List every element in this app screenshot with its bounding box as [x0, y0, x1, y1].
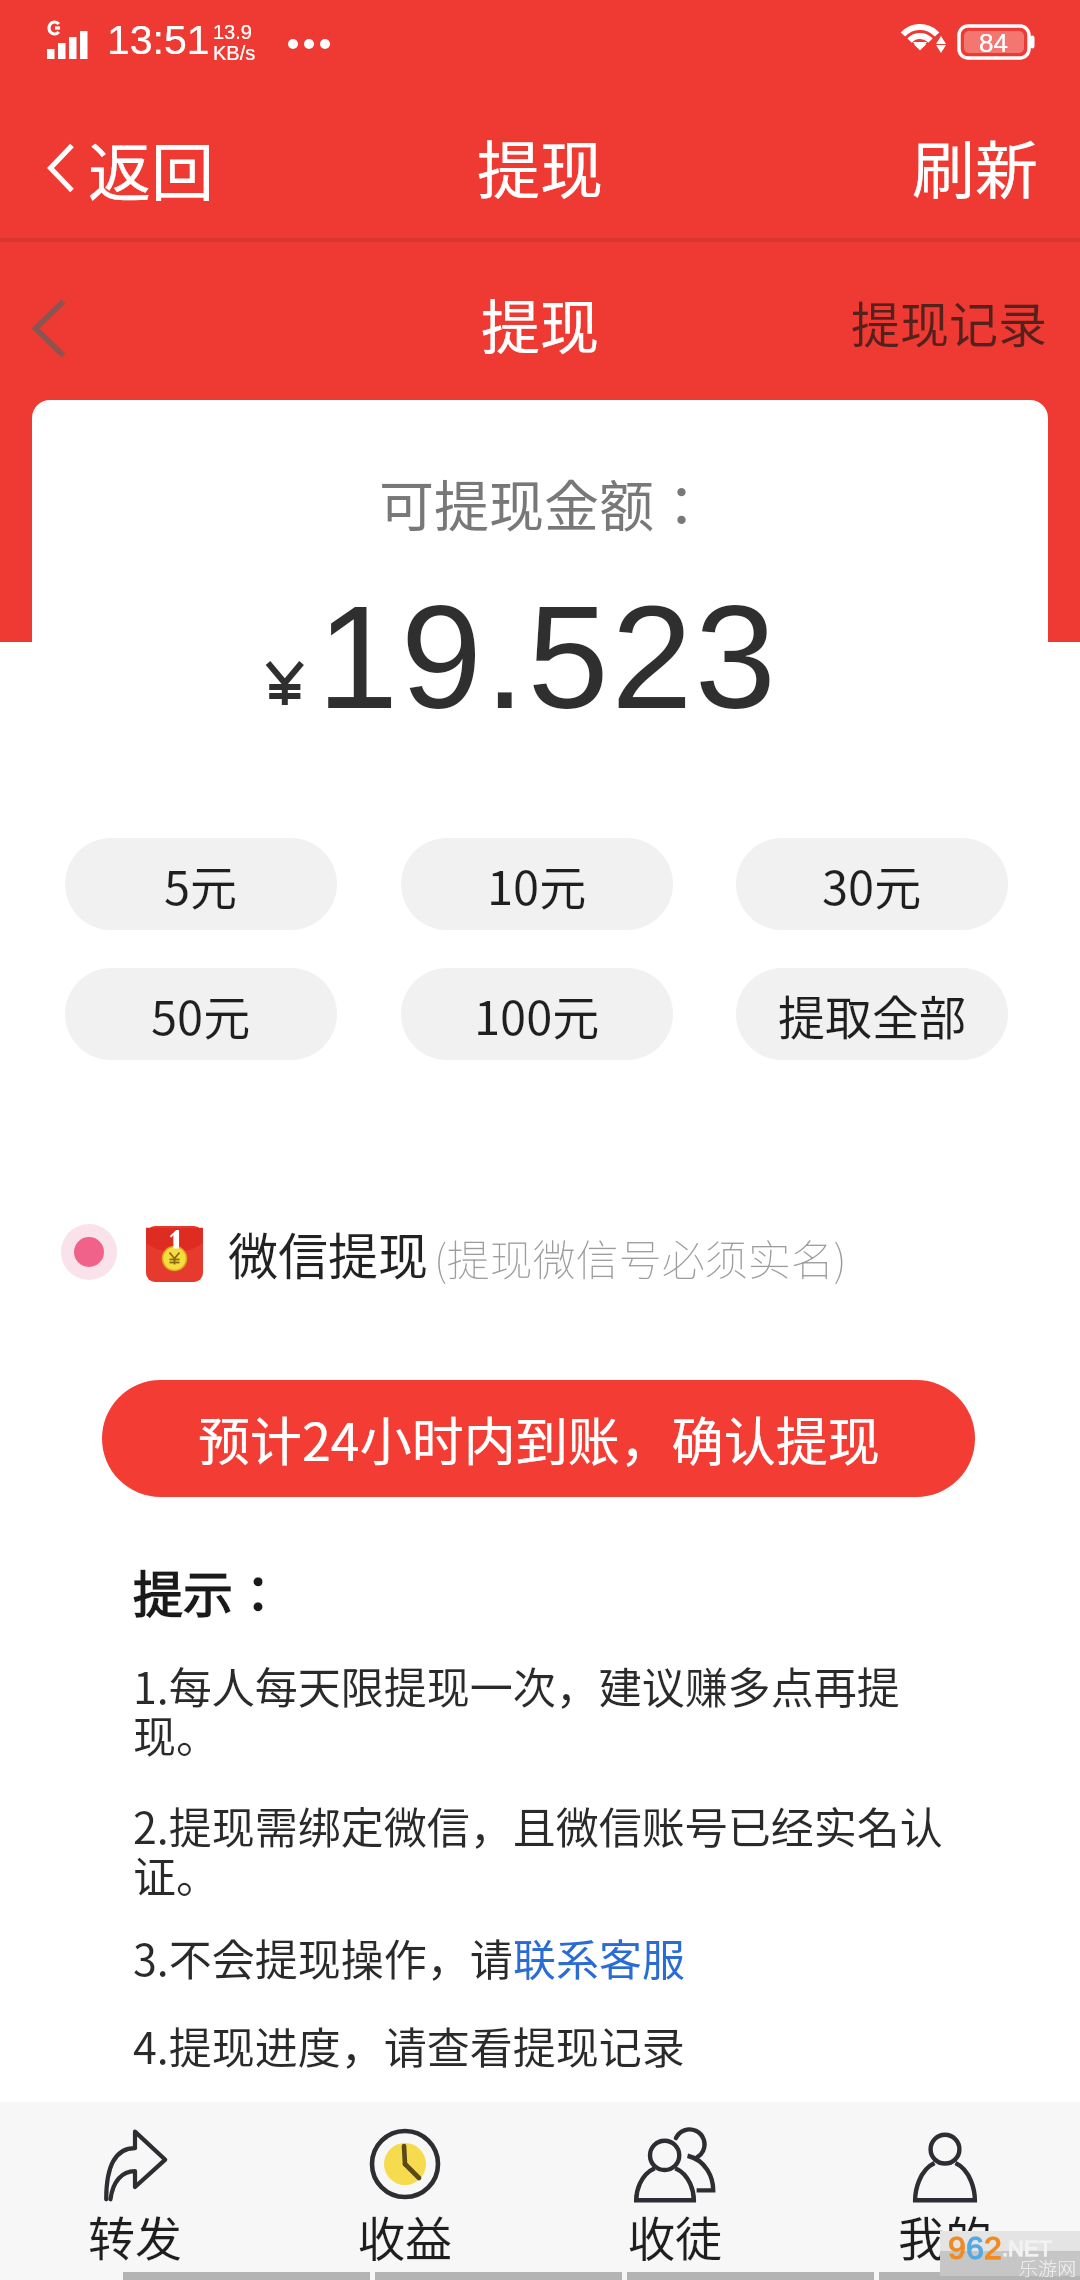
staticText: 19.523: [317, 576, 779, 739]
staticText: 提取全部: [778, 980, 966, 1048]
button[interactable]: 联系客服: [513, 1926, 685, 1988]
button[interactable]: [270, 2102, 540, 2280]
staticText: 提示：: [133, 1555, 283, 1627]
button[interactable]: 10元: [401, 838, 673, 930]
staticText: 6: [966, 2230, 984, 2266]
staticText: 2.提现需绑定微信，且微信账号已经实名认证。: [133, 1794, 963, 1906]
staticText: 5元: [164, 850, 238, 918]
button[interactable]: 50元: [65, 968, 337, 1060]
staticText: 收益: [358, 2201, 452, 2269]
staticText: 1.每人每天限提现一次，建议赚多点再提现。: [133, 1654, 933, 1766]
staticText: 84: [979, 28, 1008, 57]
button[interactable]: 5元: [65, 838, 337, 930]
staticText: 3.不会提现操作，请: [133, 1926, 513, 1988]
staticText: 提现记录: [851, 286, 1048, 357]
staticText: (提现微信号必须实名): [434, 1226, 847, 1288]
staticText: 2: [984, 2230, 1002, 2266]
staticText: 100元: [474, 980, 600, 1048]
staticText: .NET: [1002, 2236, 1053, 2261]
button[interactable]: 提取全部: [736, 968, 1008, 1060]
button[interactable]: [0, 2102, 270, 2280]
staticText: 可提现金额：: [379, 462, 710, 542]
button[interactable]: Back: [9, 275, 90, 382]
staticText: 50元: [151, 980, 251, 1048]
button[interactable]: 返回: [14, 108, 240, 227]
staticText: KB/s: [213, 42, 256, 64]
staticText: 预计24小时内到账，确认提现: [198, 1401, 880, 1476]
staticText: 转发: [88, 2201, 182, 2269]
staticText: 10元: [487, 850, 587, 918]
button[interactable]: 提现记录: [827, 274, 1080, 369]
staticText: 微信提现: [228, 1217, 428, 1289]
staticText: 我的: [898, 2201, 992, 2269]
staticText: 4.提现进度，请查看提现记录: [133, 2014, 685, 2076]
button[interactable]: [540, 2102, 810, 2280]
button[interactable]: 预计24小时内到账，确认提现: [102, 1380, 975, 1497]
button[interactable]: 刷新: [886, 108, 1080, 223]
staticText: 13.9: [213, 21, 252, 43]
staticText: 乐游网: [1019, 2254, 1077, 2280]
staticText: 13:51: [107, 17, 210, 63]
staticText: 收徒: [628, 2201, 722, 2269]
staticText: 刷新: [912, 120, 1038, 211]
button[interactable]: 30元: [736, 838, 1008, 930]
staticText: 30元: [822, 850, 922, 918]
staticText: 9: [948, 2230, 966, 2266]
staticText: 联系客服: [513, 1926, 685, 1988]
button[interactable]: [810, 2102, 1080, 2280]
staticText: 返回: [88, 122, 214, 213]
button[interactable]: [40, 1212, 860, 1292]
staticText: 提现: [481, 281, 600, 366]
button[interactable]: 100元: [401, 968, 673, 1060]
staticText: 提现: [477, 120, 603, 211]
